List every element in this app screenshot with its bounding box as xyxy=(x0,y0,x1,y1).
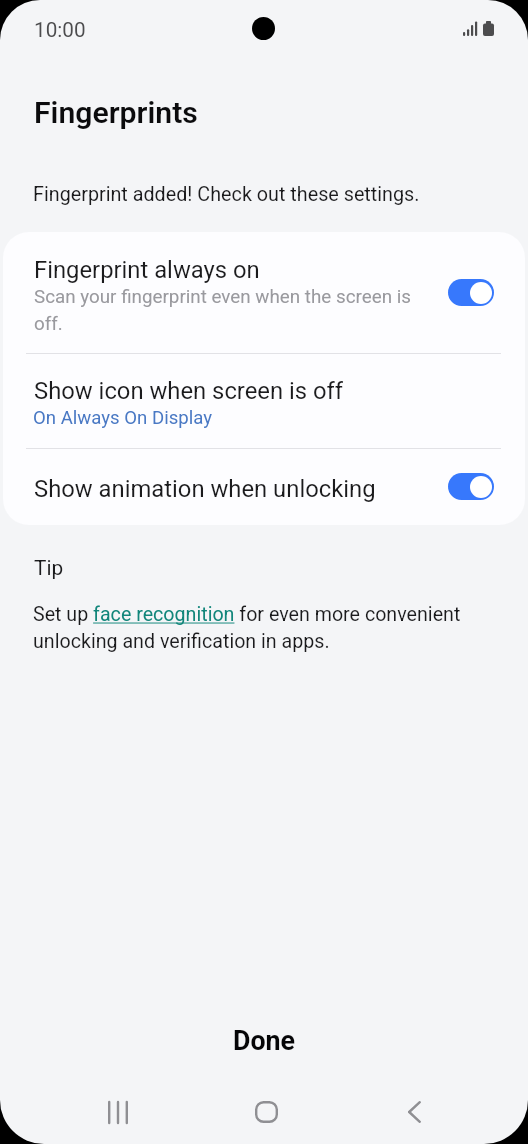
button[interactable]: Toggle xyxy=(448,279,494,306)
staticText: 10:00 xyxy=(34,18,86,42)
button[interactable]: Back xyxy=(364,1080,464,1144)
staticText: Fingerprint added! Check out these setti… xyxy=(33,183,420,206)
staticText: Tip xyxy=(34,556,64,580)
button[interactable]: Done xyxy=(0,1010,528,1070)
staticText: On Always On Display xyxy=(33,407,213,429)
button[interactable]: Recent apps xyxy=(68,1080,168,1144)
staticText: Fingerprint always on xyxy=(34,256,260,284)
button[interactable]: Show icon when screen is off xyxy=(3,354,525,449)
staticText: Show icon when screen is off xyxy=(34,377,344,405)
button[interactable]: Fingerprint always on xyxy=(3,232,525,353)
staticText: Scan your fingerprint even when the scre… xyxy=(34,286,416,335)
button[interactable]: Home xyxy=(216,1080,316,1144)
staticText: Fingerprints xyxy=(34,95,198,130)
button[interactable]: Show animation when unlocking xyxy=(3,449,525,525)
staticText: Done xyxy=(233,1025,296,1056)
button[interactable]: Toggle xyxy=(448,473,494,500)
staticText: Show animation when unlocking xyxy=(34,475,376,503)
staticText: Set up face recognition for even more co… xyxy=(33,603,476,652)
